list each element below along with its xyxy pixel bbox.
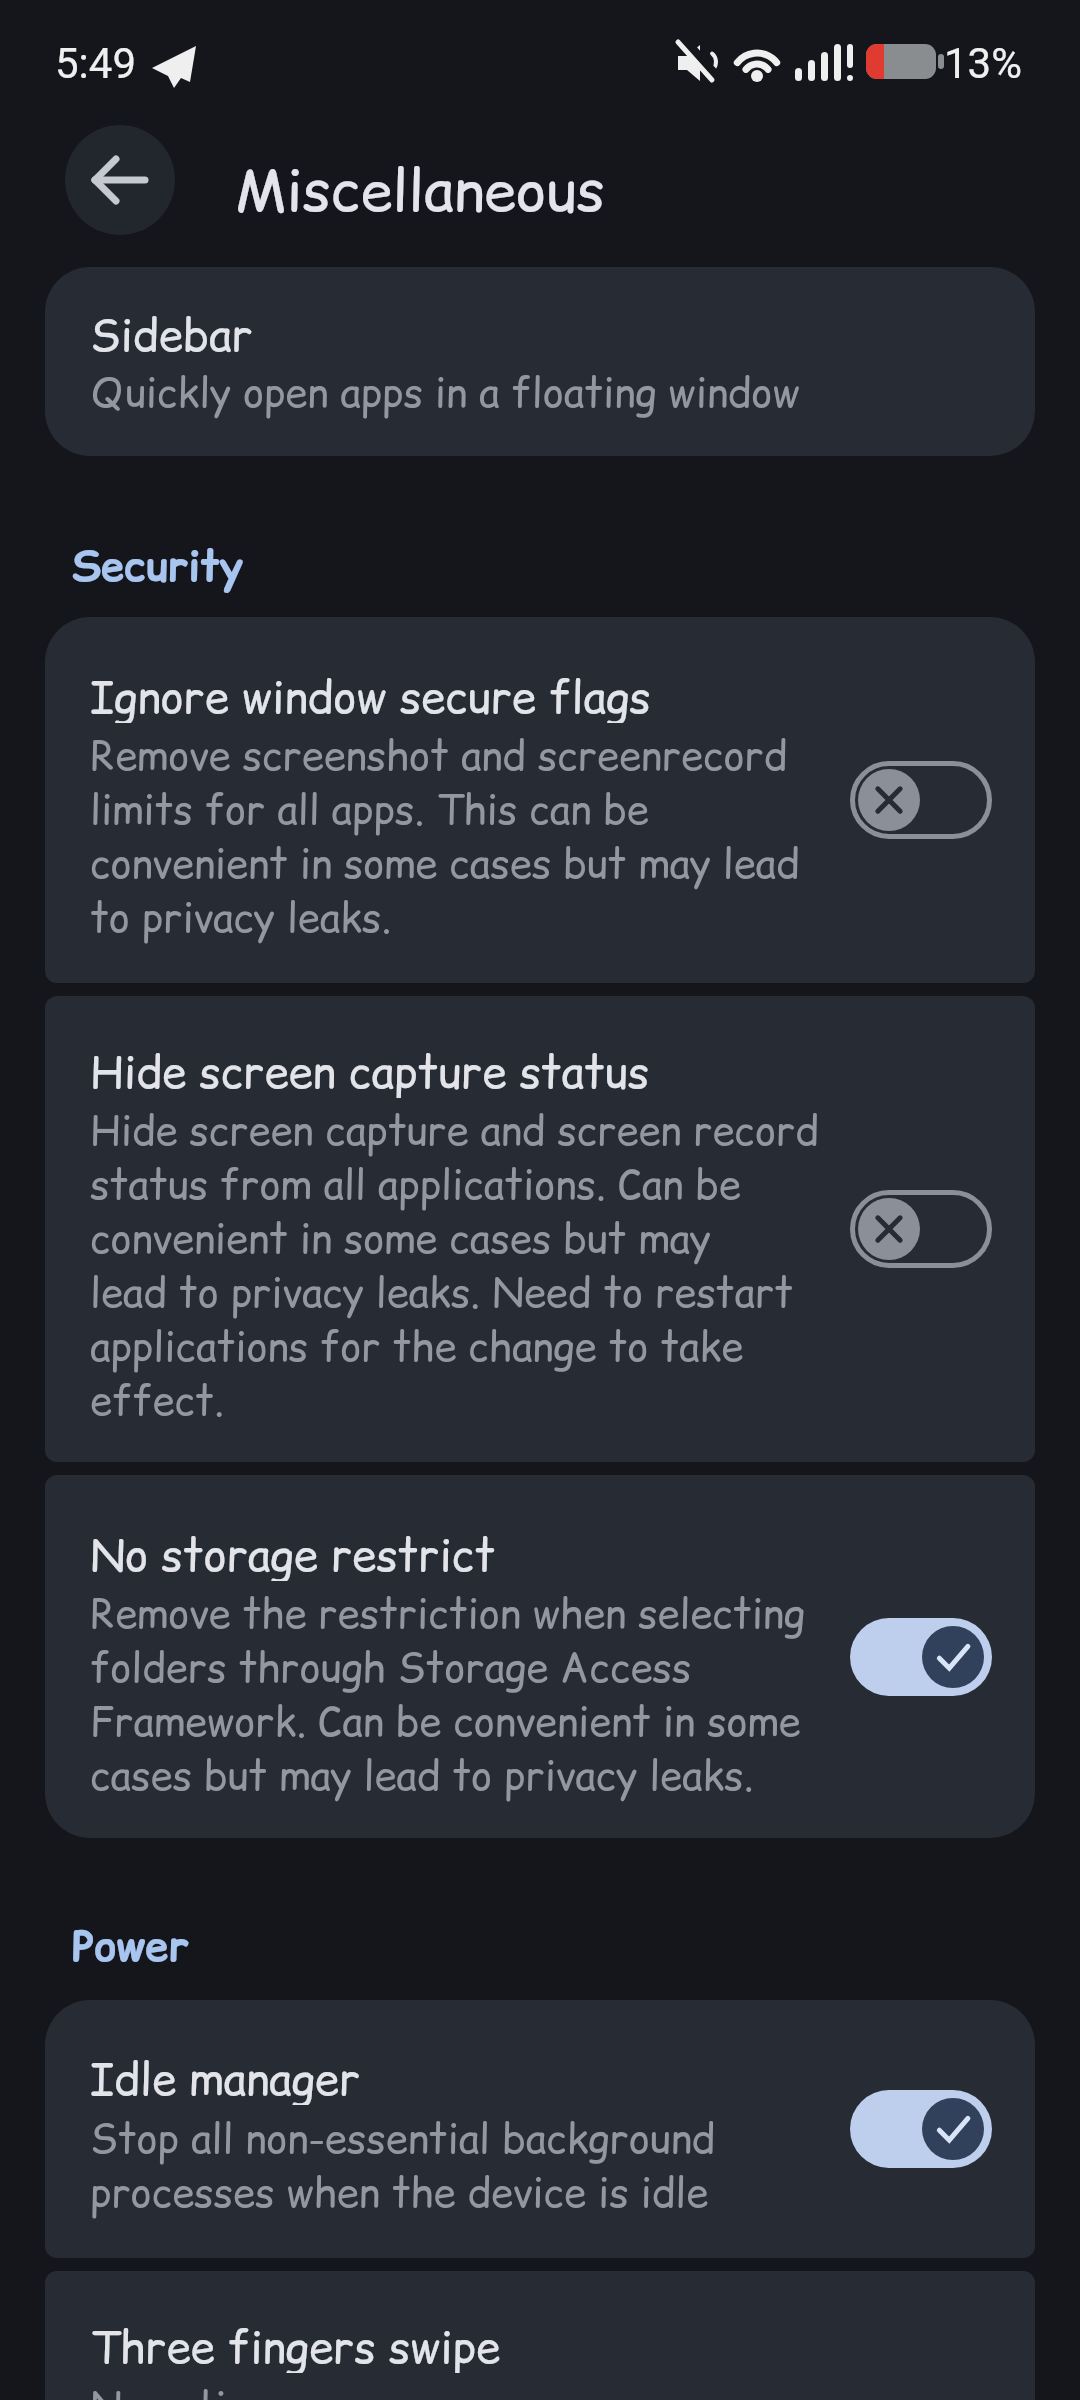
staticText: Miscellaneous — [235, 150, 605, 214]
staticText: Ignore window secure flags — [90, 667, 651, 723]
button[interactable] — [850, 2090, 992, 2168]
staticText: to privacy leaks. — [90, 890, 392, 944]
button[interactable]: Three fingers swipe — [45, 2271, 1035, 2400]
staticText: Quickly open apps in a floating window — [90, 365, 800, 419]
staticText: Security — [72, 537, 243, 593]
staticText: Three fingers swipe — [90, 2317, 501, 2373]
button[interactable] — [65, 125, 175, 235]
staticText: Framework. Can be convenient in some — [90, 1694, 801, 1748]
staticText: applications for the change to take — [90, 1319, 744, 1373]
staticText: cases but may lead to privacy leaks. — [90, 1748, 754, 1802]
button[interactable] — [850, 1190, 992, 1268]
staticText: convenient in some cases but may lead — [90, 836, 800, 890]
button[interactable]: Idle manager — [45, 2000, 1035, 2258]
staticText: Hide screen capture and screen record — [90, 1103, 819, 1157]
staticText: folders through Storage Access — [90, 1640, 692, 1694]
staticText: effect. — [90, 1373, 224, 1427]
staticText: No storage restrict — [90, 1525, 496, 1581]
staticText: lead to privacy leaks. Need to restart — [90, 1265, 793, 1319]
staticText: 5:49 — [55, 39, 136, 88]
staticText: Remove the restriction when selecting — [90, 1586, 806, 1640]
staticText: No action — [90, 2379, 268, 2400]
button[interactable]: Hide screen capture status — [45, 996, 1035, 1462]
staticText: Remove screenshot and screenrecord — [90, 728, 788, 782]
staticText: Sidebar — [90, 305, 253, 361]
staticText: Hide screen capture status — [90, 1042, 650, 1098]
staticText: status from all applications. Can be — [90, 1157, 741, 1211]
staticText: convenient in some cases but may — [90, 1211, 711, 1265]
button[interactable] — [850, 1618, 992, 1696]
staticText: Power — [72, 1917, 189, 1973]
button[interactable]: Ignore window secure flags — [45, 617, 1035, 983]
staticText: processes when the device is idle — [90, 2165, 709, 2219]
button[interactable]: No storage restrict — [45, 1475, 1035, 1838]
staticText: 13% — [944, 39, 1022, 88]
staticText: limits for all apps. This can be — [90, 782, 649, 836]
staticText: Stop all non-essential background — [90, 2111, 716, 2165]
button[interactable] — [850, 761, 992, 839]
button[interactable]: Sidebar — [45, 267, 1035, 456]
staticText: Idle manager — [90, 2049, 361, 2105]
